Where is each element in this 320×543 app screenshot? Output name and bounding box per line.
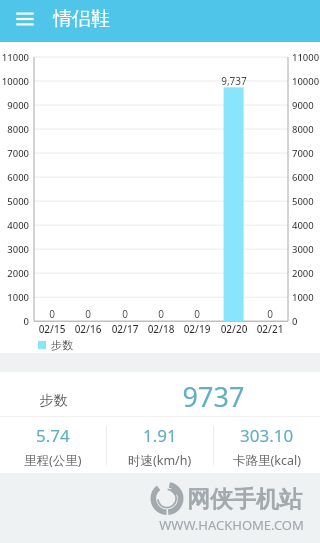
staticText: 5000	[0, 195, 29, 208]
staticText: 02/20	[212, 322, 256, 336]
staticText: 5000	[292, 195, 320, 208]
staticText: 303.10	[240, 424, 294, 447]
staticText: 时速(km/h)	[128, 452, 192, 469]
staticText: 2000	[292, 267, 320, 280]
staticText: 7000	[292, 147, 320, 160]
staticText: 1000	[0, 291, 29, 304]
button[interactable]: Menu	[11, 5, 39, 33]
staticText: 0	[292, 315, 320, 328]
button[interactable]: 5.74	[0, 423, 106, 468]
staticText: 4000	[292, 219, 320, 232]
staticText: 步数	[51, 338, 73, 352]
staticText: 0	[175, 307, 219, 321]
staticText: 9000	[0, 99, 29, 112]
staticText: 情侣鞋	[53, 7, 110, 31]
staticText: 3000	[0, 243, 29, 256]
staticText: 02/15	[30, 322, 74, 336]
button[interactable]: 1.91	[107, 423, 213, 468]
staticText: 11000	[292, 51, 320, 64]
staticText: 1.91	[143, 424, 177, 447]
staticText: 网侠手机站	[187, 485, 302, 514]
staticText: 02/18	[139, 322, 183, 336]
staticText: 02/16	[66, 322, 110, 336]
staticText: 02/19	[175, 322, 219, 336]
staticText: 5.74	[36, 424, 70, 447]
staticText: 8000	[292, 123, 320, 136]
staticText: 11000	[0, 51, 29, 64]
staticText: 0	[139, 307, 183, 321]
staticText: 0	[0, 315, 29, 328]
staticText: 02/17	[103, 322, 147, 336]
staticText: 里程(公里)	[24, 452, 82, 469]
staticText: WWW.HACKHOME.COM	[151, 516, 312, 534]
staticText: 4000	[0, 219, 29, 232]
staticText: 2000	[0, 267, 29, 280]
staticText: 6000	[292, 171, 320, 184]
staticText: 9,737	[212, 74, 256, 88]
staticText: 9737	[107, 378, 320, 415]
staticText: 9000	[292, 99, 320, 112]
staticText: 0	[66, 307, 110, 321]
button[interactable]: 303.10	[214, 423, 320, 468]
staticText: 步数	[0, 392, 107, 410]
button[interactable]: 步数	[0, 372, 320, 416]
staticText: 10000	[0, 75, 29, 88]
staticText: 10000	[292, 75, 320, 88]
staticText: 1000	[292, 291, 320, 304]
staticText: 7000	[0, 147, 29, 160]
staticText: 6000	[0, 171, 29, 184]
staticText: 0	[103, 307, 147, 321]
staticText: 0	[248, 307, 292, 321]
staticText: 8000	[0, 123, 29, 136]
staticText: 3000	[292, 243, 320, 256]
staticText: 卡路里(kcal)	[233, 452, 301, 469]
staticText: 0	[30, 307, 74, 321]
staticText: 02/21	[248, 322, 292, 336]
